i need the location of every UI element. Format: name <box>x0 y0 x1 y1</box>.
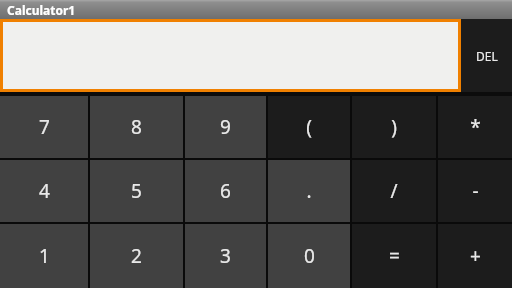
staticText: 0 <box>304 243 315 269</box>
button[interactable]: 8 <box>90 96 183 158</box>
staticText: 3 <box>220 243 231 269</box>
staticText: . <box>306 178 312 204</box>
staticText: 6 <box>220 178 231 204</box>
button[interactable]: * <box>438 96 512 158</box>
button[interactable]: + <box>438 224 512 288</box>
staticText: DEL <box>476 48 498 64</box>
button[interactable]: 2 <box>90 224 183 288</box>
button[interactable]: 3 <box>185 224 266 288</box>
button[interactable]: 4 <box>0 160 88 222</box>
staticText: * <box>470 114 481 140</box>
staticText: 5 <box>131 178 142 204</box>
staticText: Calculator1 <box>7 2 76 18</box>
staticText: 4 <box>39 178 50 204</box>
staticText: ( <box>306 114 312 140</box>
button[interactable]: 9 <box>185 96 266 158</box>
button[interactable]: / <box>352 160 436 222</box>
staticText: + <box>470 243 481 269</box>
staticText: - <box>472 178 479 204</box>
staticText: 7 <box>39 114 50 140</box>
button[interactable]: 6 <box>185 160 266 222</box>
staticText: 8 <box>131 114 142 140</box>
button[interactable]: 7 <box>0 96 88 158</box>
button[interactable]: - <box>438 160 512 222</box>
staticText: = <box>389 243 400 269</box>
button[interactable]: ) <box>352 96 436 158</box>
staticText: ) <box>391 114 397 140</box>
button[interactable]: ( <box>268 96 350 158</box>
staticText: 9 <box>220 114 231 140</box>
button[interactable]: = <box>352 224 436 288</box>
staticText: 2 <box>131 243 142 269</box>
button[interactable]: 0 <box>268 224 350 288</box>
staticText: / <box>390 178 398 204</box>
button[interactable]: 1 <box>0 224 88 288</box>
staticText: 1 <box>39 243 50 269</box>
button[interactable]: 5 <box>90 160 183 222</box>
button[interactable]: Delete <box>461 19 512 92</box>
button[interactable]: . <box>268 160 350 222</box>
